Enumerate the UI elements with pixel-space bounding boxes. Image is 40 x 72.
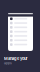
button[interactable]: App	[8, 17, 33, 21]
button[interactable]: App	[8, 25, 33, 29]
button[interactable]: App	[8, 21, 33, 25]
button[interactable]: App	[8, 38, 33, 42]
button[interactable]: App	[8, 34, 33, 38]
button[interactable]: App	[8, 42, 33, 47]
staticText: Manage your	[4, 56, 28, 61]
staticText: apps	[4, 61, 12, 65]
button[interactable]: App	[8, 29, 33, 34]
